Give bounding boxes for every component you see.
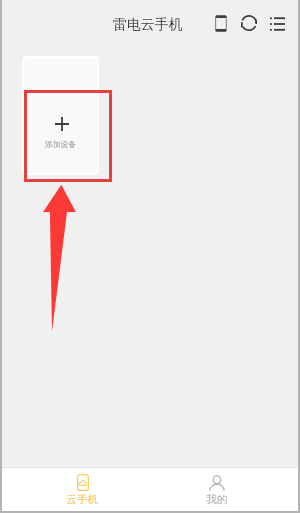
button[interactable]: 添加设备	[22, 56, 99, 175]
staticText: 云手机	[66, 493, 99, 507]
button[interactable]: List view	[266, 12, 289, 35]
button[interactable]: 云手机	[8, 468, 158, 512]
staticText: 我的	[206, 493, 228, 507]
button[interactable]: Refresh	[237, 11, 260, 34]
staticText: 添加设备	[45, 139, 77, 149]
staticText: 雷电云手机	[113, 16, 183, 34]
button[interactable]: 我的	[158, 468, 292, 512]
button[interactable]: Device	[209, 12, 232, 35]
